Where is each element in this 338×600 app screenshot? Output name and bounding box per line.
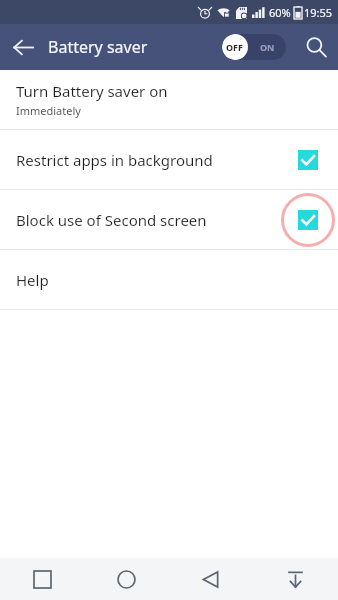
- button[interactable]: Recent apps: [0, 558, 84, 600]
- button[interactable]: Help: [0, 250, 338, 309]
- button[interactable]: Restrict apps in background: [0, 130, 338, 189]
- button[interactable]: Home: [84, 558, 168, 600]
- staticText: Restrict apps in background: [16, 150, 213, 170]
- staticText: Turn Battery saver on: [16, 81, 168, 101]
- staticText: Battery saver: [48, 36, 148, 58]
- button[interactable]: Back: [168, 558, 253, 600]
- button[interactable]: Hide: [253, 558, 338, 600]
- staticText: 60%: [269, 5, 291, 20]
- button[interactable]: Back: [0, 24, 46, 70]
- button[interactable]: Search: [294, 25, 338, 69]
- staticText: Help: [16, 270, 49, 290]
- button[interactable]: Battery saver off: [222, 34, 286, 60]
- staticText: Immediately: [16, 103, 81, 118]
- button[interactable]: Turn Battery saver on: [0, 70, 338, 129]
- staticText: Block use of Second screen: [16, 210, 207, 230]
- staticText: OFF: [226, 41, 244, 53]
- staticText: 19:55: [304, 5, 333, 20]
- button[interactable]: Block use of Second screen: [0, 190, 338, 249]
- staticText: ON: [260, 41, 275, 53]
